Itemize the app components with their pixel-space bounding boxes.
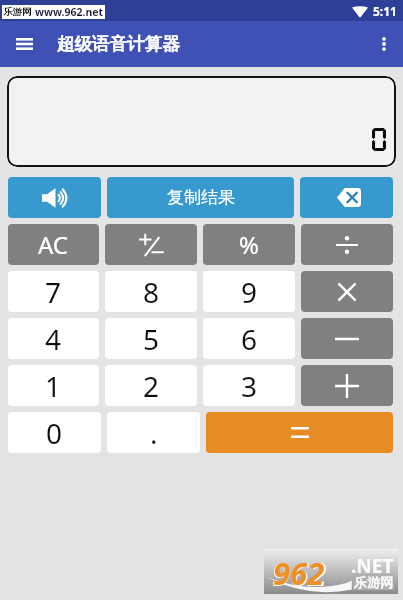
staticText: 962 [273, 552, 325, 594]
button[interactable]: 4 [8, 318, 99, 359]
staticText: 8 [143, 273, 160, 311]
button[interactable]: Plus minus [105, 224, 197, 265]
staticText: 1 [45, 367, 62, 405]
staticText: 超级语音计算器 [57, 33, 180, 55]
other: Equals [291, 427, 309, 438]
button[interactable]: Speak result [8, 177, 101, 218]
button[interactable]: More options [368, 28, 400, 60]
staticText: .NET [351, 553, 394, 579]
button[interactable]: 3 [203, 365, 295, 406]
staticText: 5:11 [373, 3, 397, 19]
button[interactable]: Add [301, 365, 393, 406]
staticText: 乐游网 [3, 6, 32, 18]
staticText: 乐游网 [354, 574, 393, 590]
other: Backspace [337, 188, 361, 207]
staticText: AC [38, 228, 69, 261]
button[interactable]: 0 [8, 412, 101, 453]
staticText: 7 [45, 273, 62, 311]
button[interactable]: Subtract [301, 318, 393, 359]
button[interactable]: . [107, 412, 200, 453]
staticText: 9 [241, 273, 258, 311]
button[interactable]: 5 [105, 318, 197, 359]
staticText: 复制结果 [167, 187, 235, 208]
button[interactable]: Divide [301, 224, 393, 265]
button[interactable]: 8 [105, 271, 197, 312]
button[interactable]: Equals [206, 412, 393, 453]
button[interactable]: % [203, 224, 295, 265]
button[interactable]: 2 [105, 365, 197, 406]
button[interactable]: Menu [8, 28, 40, 60]
button[interactable]: AC [8, 224, 99, 265]
staticText: % [239, 228, 259, 261]
other: Subtract [335, 327, 359, 351]
button[interactable]: 9 [203, 271, 295, 312]
other: Speak result [42, 188, 69, 208]
button[interactable]: Multiply [301, 271, 393, 312]
other: Multiply [335, 280, 359, 304]
other: Add [335, 374, 359, 398]
staticText: . [150, 414, 158, 452]
staticText: 0 [46, 414, 63, 452]
staticText: 962 [272, 551, 327, 594]
button[interactable]: Backspace [300, 177, 393, 218]
button[interactable]: 1 [8, 365, 99, 406]
button[interactable]: 7 [8, 271, 99, 312]
staticText: 4 [45, 320, 62, 358]
staticText: 6 [241, 320, 258, 358]
staticText: 2 [143, 367, 160, 405]
button[interactable]: 复制结果 [107, 177, 294, 218]
button[interactable]: 6 [203, 318, 295, 359]
other: Plus minus [138, 233, 164, 257]
staticText: 3 [241, 367, 258, 405]
staticText: www.962.net [35, 5, 104, 19]
other: Divide [336, 234, 358, 256]
staticText: 5 [143, 320, 160, 358]
button[interactable] [7, 76, 396, 167]
